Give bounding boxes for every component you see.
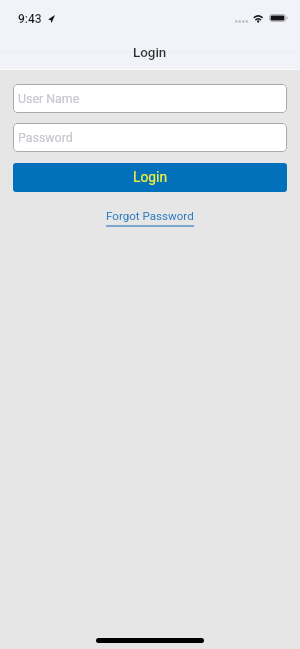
staticText: Forgot Password: [106, 209, 194, 223]
staticText: Password: [18, 130, 73, 145]
staticText: 9:43: [18, 12, 42, 26]
other: Battery: [269, 14, 288, 22]
button[interactable]: Login: [13, 163, 287, 192]
staticText: Login: [133, 45, 167, 61]
button[interactable]: Password: [13, 123, 287, 152]
staticText: User Name: [18, 91, 80, 106]
other: Wi-Fi: [251, 12, 265, 23]
button[interactable]: Forgot Password: [13, 209, 287, 227]
staticText: Login: [133, 169, 168, 185]
button[interactable]: User Name: [13, 84, 287, 113]
other: Location: [48, 15, 55, 23]
